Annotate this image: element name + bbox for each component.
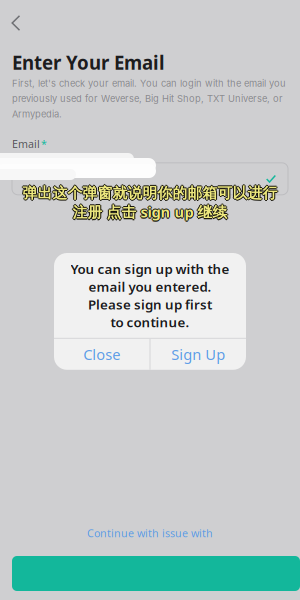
staticText: You can sign up with the [70,260,229,278]
staticText: Email [12,137,40,151]
staticText: 弹出这个弹窗就说明你的邮箱可以进行 [21,184,276,202]
staticText: to continue. [110,313,189,331]
staticText: 注册 点击 sign up 继续 [73,202,228,221]
staticText: email you entered. [88,278,211,295]
button[interactable]: Continue with issue with [0,524,300,542]
staticText: 弹出这个弹窗就说明你的邮箱可以进行 [22,183,277,201]
staticText: 弹出这个弹窗就说明你的邮箱可以进行 [22,185,277,203]
button[interactable]: Sign Up [150,339,246,370]
staticText: Armypedia. [12,108,62,120]
staticText: * [41,137,47,151]
staticText: 注册 点击 sign up 继续 [72,202,227,221]
staticText: 注册 点击 sign up 继续 [72,201,227,220]
staticText: 注册 点击 sign up 继续 [72,203,227,223]
button[interactable] [0,556,300,591]
staticText: 弹出这个弹窗就说明你的邮箱可以进行 [22,184,277,202]
staticText: Close [83,345,120,364]
button[interactable]: Close [54,339,149,370]
staticText: 注册 点击 sign up 继续 [71,202,226,221]
staticText: Enter Your Email [12,50,165,75]
staticText: Continue with issue with [87,526,213,540]
button[interactable]: Back [0,8,32,38]
staticText: previously used for Weverse, Big Hit Sho… [12,93,283,104]
staticText: Sign Up [171,345,225,364]
staticText: First, let's check your email. You can l… [12,78,286,89]
staticText: 弹出这个弹窗就说明你的邮箱可以进行 [23,184,278,202]
staticText: Please sign up first [88,295,212,313]
